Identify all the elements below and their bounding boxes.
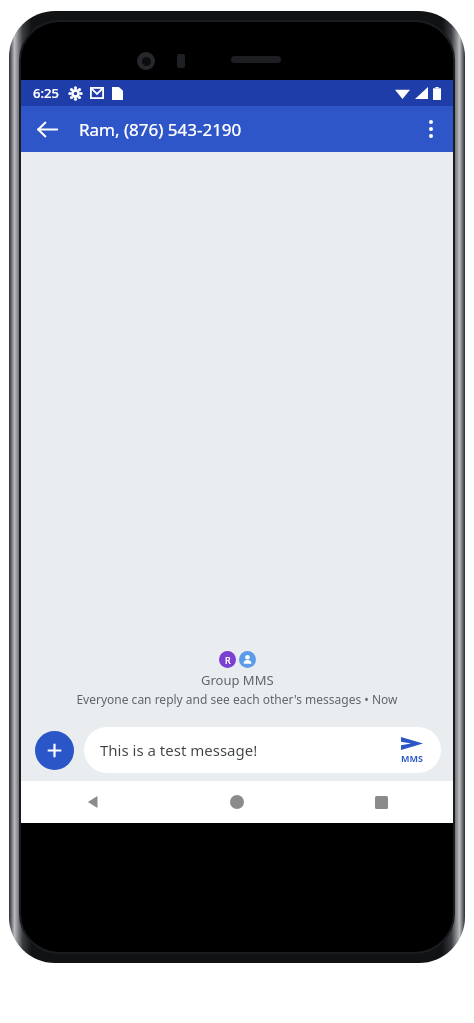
staticText: Group MMS [201,671,274,689]
button[interactable]: Back [21,781,165,823]
button[interactable]: This is a test message! [84,727,441,773]
button[interactable]: More options [409,107,453,151]
staticText: R [225,654,231,666]
staticText: 6:25 [33,84,59,102]
staticText: MMS [401,752,423,764]
staticText: This is a test message! [100,740,391,760]
staticText: Everyone can reply and see each other's … [29,691,445,707]
staticText: Ram, (876) 543-2190 [79,118,409,141]
button[interactable]: Home [165,781,309,823]
button[interactable]: Add attachment [35,731,74,770]
button[interactable]: Recent apps [309,781,453,823]
button[interactable]: Send MMS [391,736,433,764]
button[interactable]: Back [27,109,67,149]
